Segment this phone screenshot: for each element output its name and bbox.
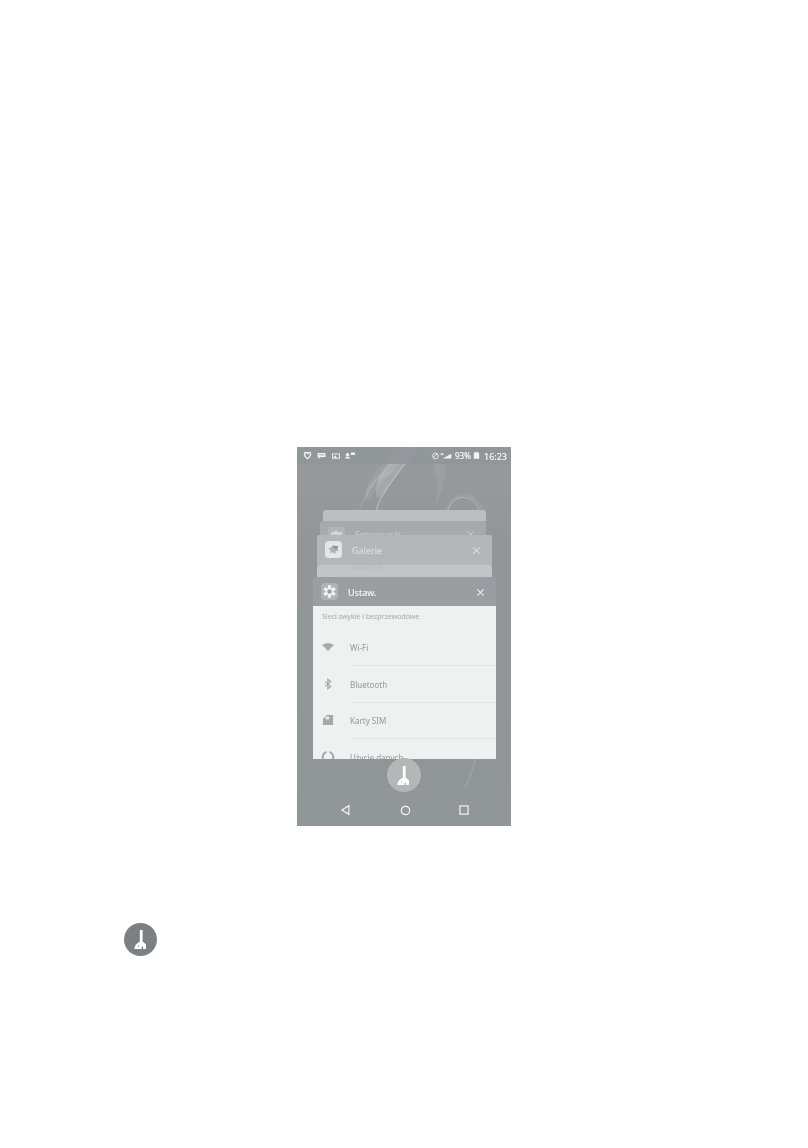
button[interactable]: Back <box>330 794 362 826</box>
button[interactable]: Home <box>389 794 421 826</box>
staticText: Galerie <box>352 565 383 572</box>
button[interactable]: Clear all tasks <box>387 758 421 792</box>
staticText: Galerie <box>352 544 383 556</box>
button[interactable]: Wi-Fi <box>313 629 496 666</box>
button[interactable]: Użycie danych <box>313 739 496 759</box>
button[interactable]: Ustaw. <box>313 577 496 606</box>
staticText: Sieci zwykłe i bezprzewodowe <box>322 612 420 622</box>
staticText: 16:23 <box>484 450 508 462</box>
button[interactable]: Close Fotoaparát <box>459 527 481 535</box>
button[interactable]: Close Ustaw. <box>469 581 491 603</box>
button[interactable]: Karty SIM <box>313 702 496 739</box>
button[interactable]: Bluetooth <box>313 666 496 703</box>
staticText: Karty SIM <box>350 715 387 726</box>
staticText: Bluetooth <box>350 679 388 690</box>
staticText: 93% <box>455 450 471 461</box>
staticText: Ustaw. <box>348 586 377 598</box>
staticText: Użycie danych <box>350 752 404 759</box>
button[interactable]: Close Galerie <box>465 539 487 561</box>
button[interactable]: Clear all <box>124 923 157 956</box>
button[interactable]: Fotoaparát <box>320 521 486 535</box>
staticText: Wi-Fi <box>350 642 369 653</box>
staticText: Fotoaparát <box>355 528 402 535</box>
button[interactable]: Recent apps <box>448 794 480 826</box>
button[interactable]: Galerie <box>317 535 492 565</box>
